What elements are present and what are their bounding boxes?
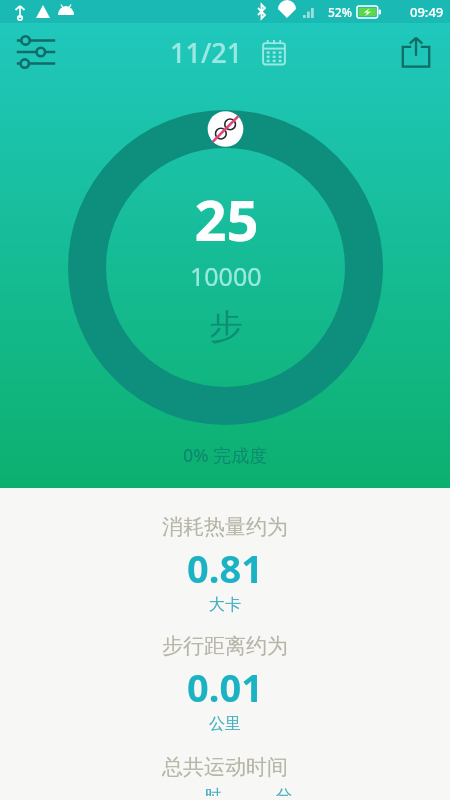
staticText: 时 bbox=[205, 786, 221, 796]
staticText: 09:49 bbox=[410, 3, 444, 21]
staticText: 消耗热量约为 bbox=[162, 514, 288, 540]
staticText: 大卡 bbox=[209, 595, 241, 615]
staticText: 总共运动时间 bbox=[162, 754, 288, 780]
staticText: 0% 完成度 bbox=[183, 443, 268, 468]
button[interactable]: 11/21 bbox=[170, 34, 287, 71]
button[interactable]: Settings bbox=[12, 28, 60, 76]
staticText: 25 bbox=[194, 181, 259, 257]
staticText: 0.01 bbox=[187, 661, 263, 713]
button[interactable]: Share bbox=[392, 28, 440, 76]
staticText: 步 bbox=[209, 305, 243, 348]
staticText: 10000 bbox=[190, 259, 262, 293]
staticText: 11/21 bbox=[170, 34, 243, 71]
staticText: 52% bbox=[328, 4, 352, 20]
staticText: 分 bbox=[276, 786, 292, 796]
staticText: 公里 bbox=[209, 714, 241, 734]
staticText: 0.81 bbox=[187, 542, 263, 594]
staticText: 步行距离约为 bbox=[162, 633, 288, 659]
